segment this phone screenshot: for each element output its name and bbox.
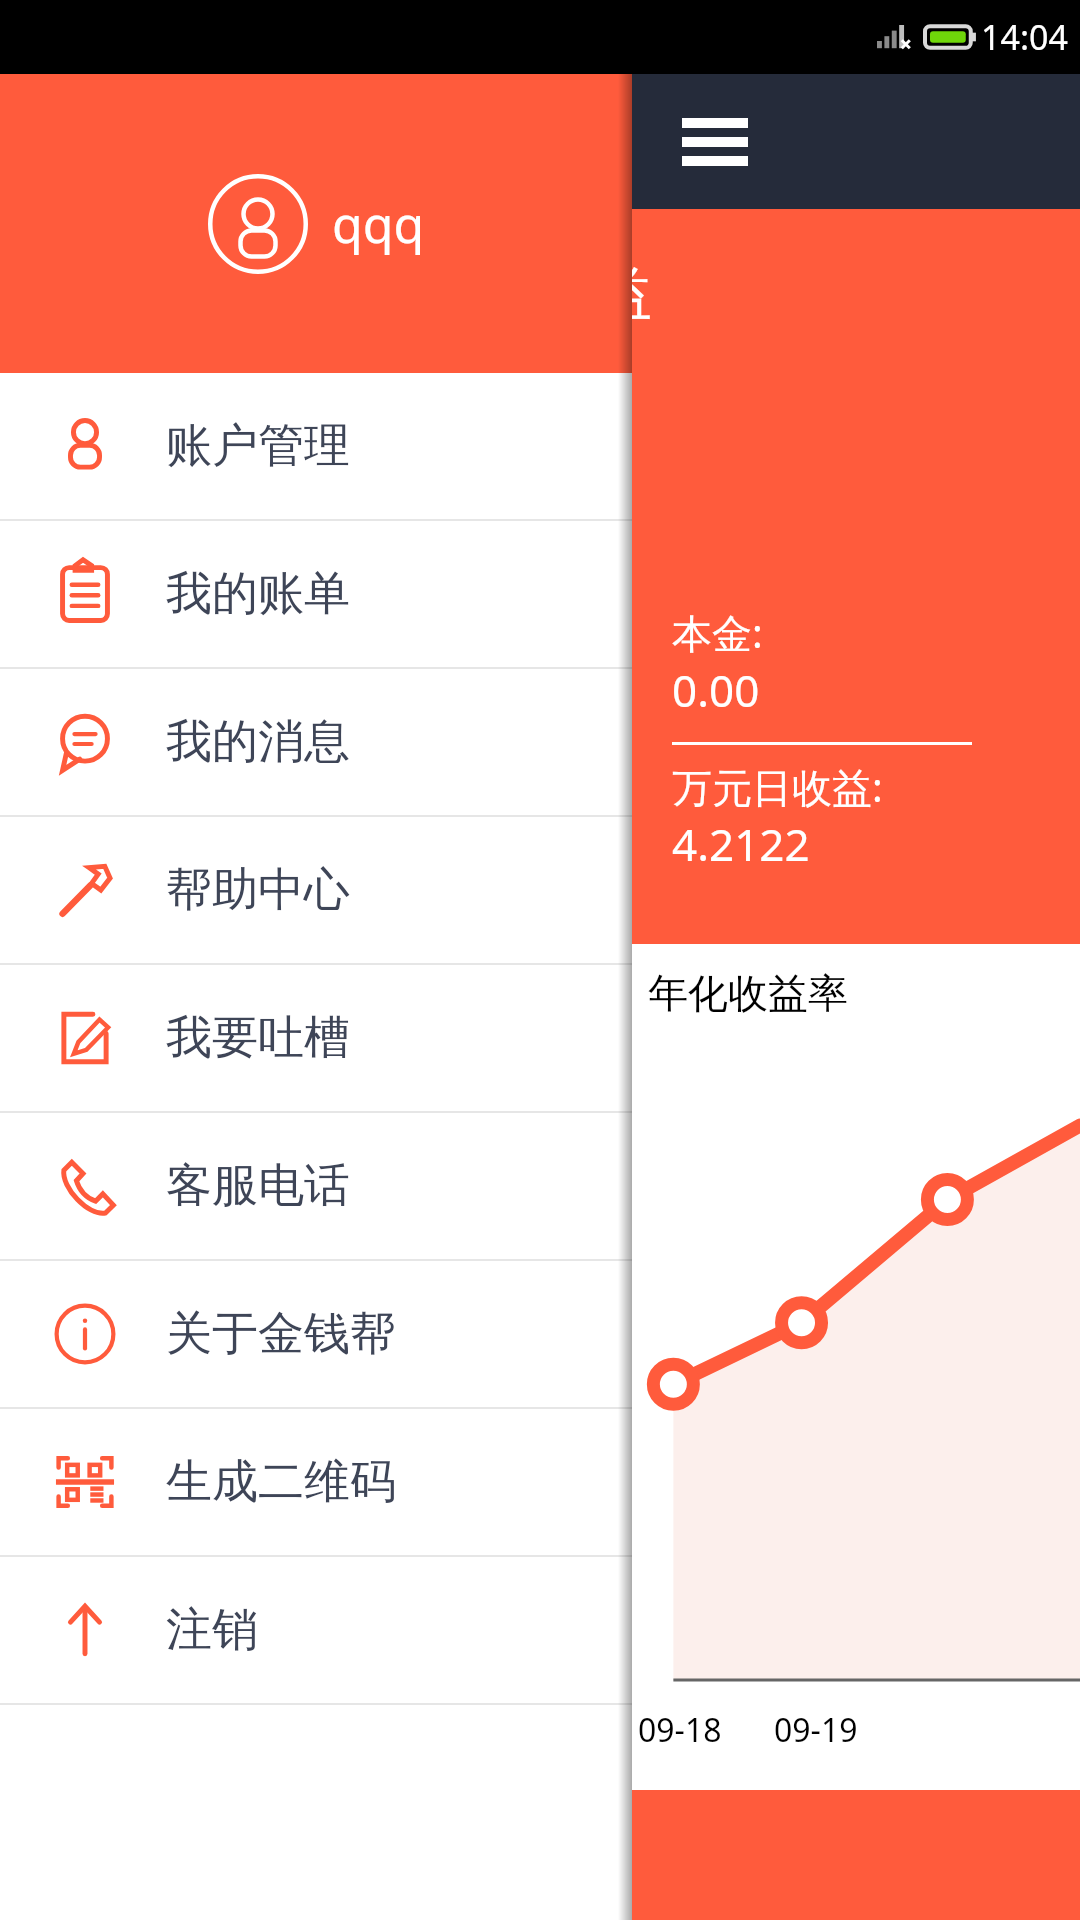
staticText: 帮助中心: [166, 861, 350, 919]
staticText: 今日收益: [428, 259, 652, 330]
staticText: 注销: [166, 1601, 258, 1659]
button[interactable]: 生成二维码: [0, 1409, 632, 1555]
button[interactable]: 帮助中心: [0, 817, 632, 963]
staticText: 0.00: [672, 660, 760, 720]
button[interactable]: 账户管理: [0, 373, 632, 519]
staticText: 14:04: [981, 14, 1068, 60]
button[interactable]: 我的消息: [0, 669, 632, 815]
button[interactable]: 我的账单: [0, 521, 632, 667]
staticText: 我要吐槽: [166, 1009, 350, 1067]
button[interactable]: Menu: [670, 97, 760, 187]
button[interactable]: 客服电话: [0, 1113, 632, 1259]
button[interactable]: 关于金钱帮: [0, 1261, 632, 1407]
staticText: 我的账单: [166, 565, 350, 623]
staticText: 4.2122: [672, 814, 810, 874]
staticText: qqq: [332, 190, 425, 258]
button[interactable]: qqq: [0, 74, 632, 373]
button[interactable]: 注销: [0, 1557, 632, 1703]
staticText: 账户管理: [166, 417, 350, 475]
staticText: 我的消息: [166, 713, 350, 771]
staticText: 本金:: [672, 605, 763, 660]
staticText: 09-18: [638, 1708, 722, 1752]
staticText: 关于金钱帮: [166, 1305, 396, 1363]
staticText: 09-19: [774, 1708, 858, 1752]
button[interactable]: 储值: [0, 1790, 1080, 1920]
staticText: 万元日收益:: [672, 759, 883, 814]
staticText: 客服电话: [166, 1157, 350, 1215]
staticText: 生成二维码: [166, 1453, 396, 1511]
staticText: 年化收益率: [648, 968, 848, 1018]
button[interactable]: 我要吐槽: [0, 965, 632, 1111]
